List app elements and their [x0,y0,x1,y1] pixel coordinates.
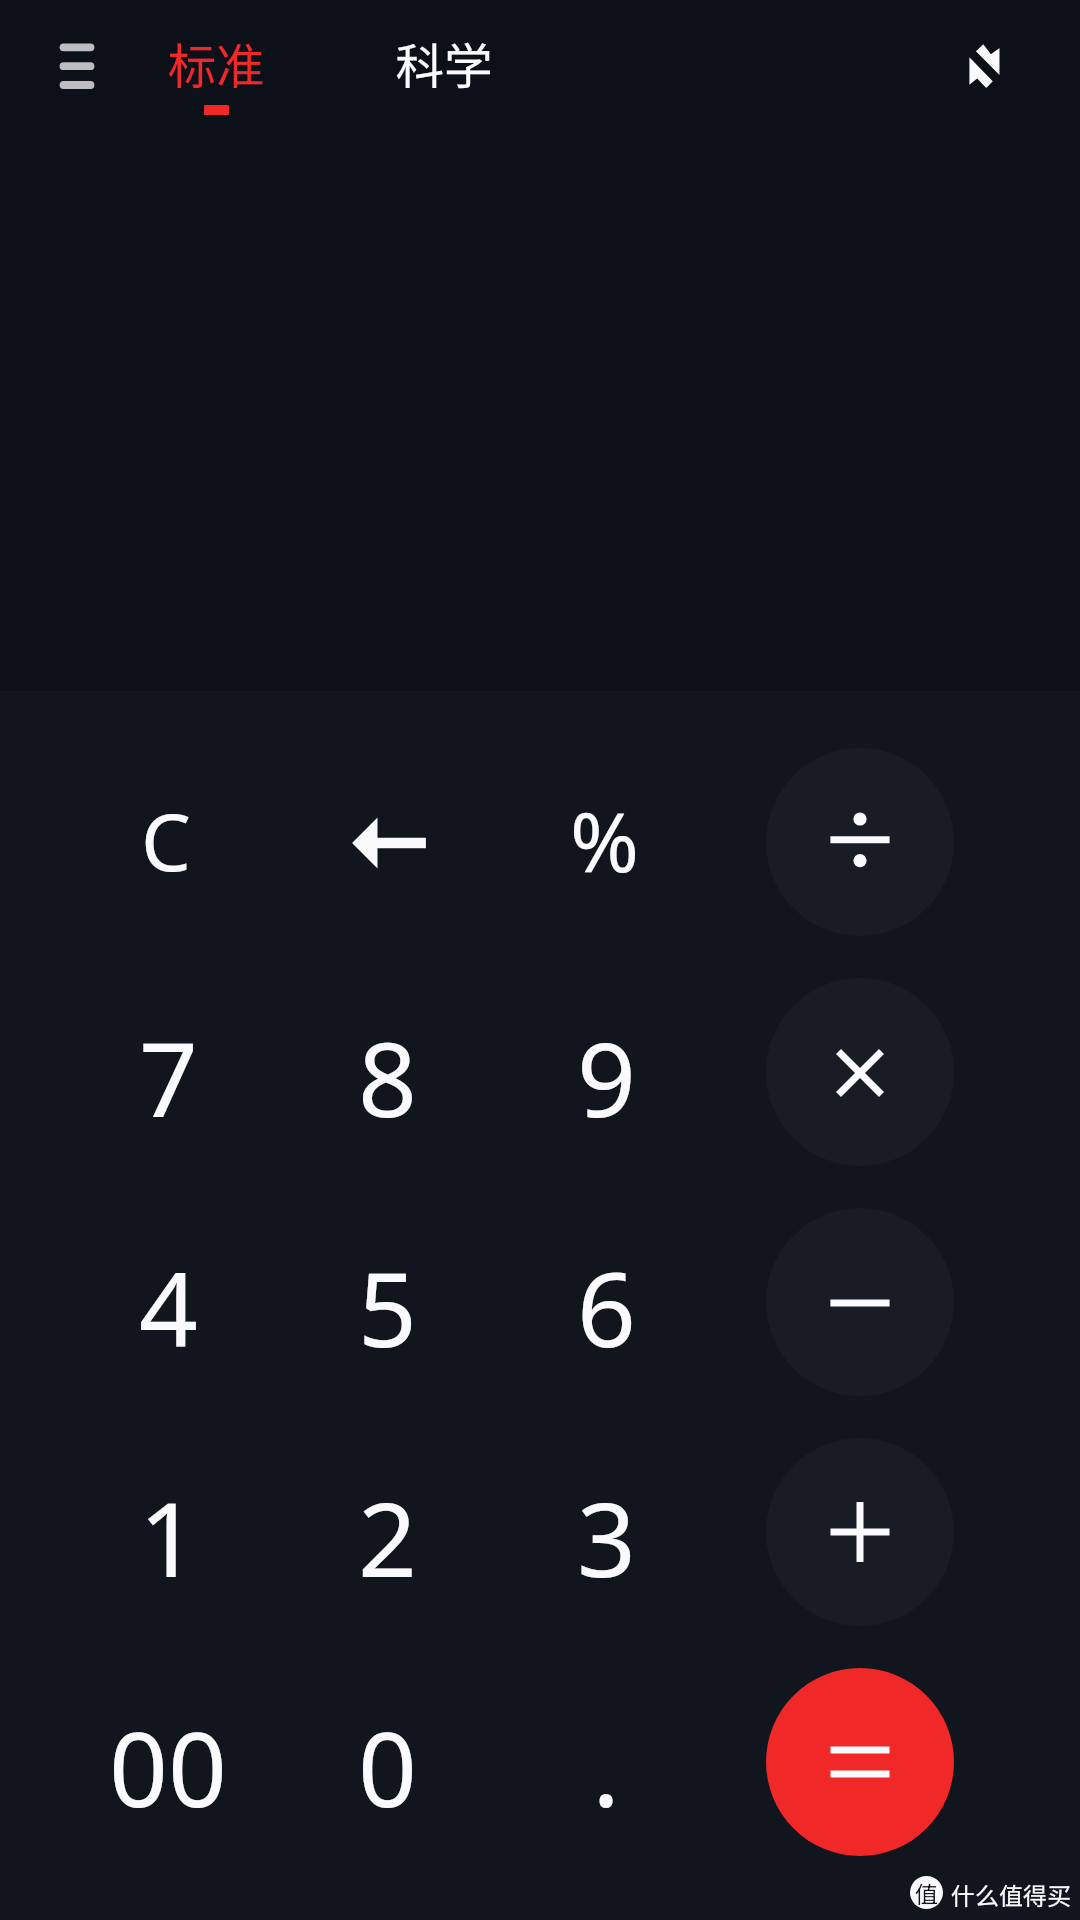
button[interactable]: Multiply [766,978,954,1166]
button[interactable]: Backspace [287,747,487,937]
staticText: 2 [358,1467,417,1607]
staticText: 科学 [395,28,493,98]
button[interactable]: 9 [506,982,706,1172]
button[interactable]: % [504,744,704,934]
staticText: 什么值得买 [951,1877,1071,1912]
button[interactable]: 科学 [378,0,510,130]
button[interactable]: Plus [766,1438,954,1626]
staticText: 标准 [167,28,265,98]
button[interactable]: 7 [68,982,268,1172]
staticText: . [592,1697,620,1837]
staticText: % [570,783,639,896]
button[interactable]: C [66,746,266,936]
staticText: 9 [577,1007,636,1147]
button[interactable]: . [506,1672,706,1862]
button[interactable]: Sound off [942,20,1026,110]
button[interactable]: 0 [287,1672,487,1862]
button[interactable]: Divide [766,748,954,936]
staticText: 0 [358,1697,417,1837]
button[interactable]: 标准 [150,0,282,130]
staticText: 5 [358,1237,417,1377]
button[interactable]: 4 [68,1212,268,1402]
button[interactable]: 3 [506,1442,706,1632]
button[interactable]: 8 [287,982,487,1172]
button[interactable]: 2 [287,1442,487,1632]
button[interactable]: 5 [287,1212,487,1402]
staticText: 4 [139,1237,198,1377]
button[interactable]: Equals [766,1668,954,1856]
staticText: 值 [915,1876,938,1909]
staticText: 8 [358,1007,417,1147]
button[interactable]: 1 [68,1442,268,1632]
staticText: 1 [139,1467,198,1607]
staticText: 7 [139,1007,198,1147]
staticText: C [141,787,191,895]
button[interactable]: Menu [38,20,118,100]
staticText: 6 [577,1237,636,1377]
staticText: 00 [109,1697,227,1837]
staticText: 3 [577,1467,636,1607]
button[interactable]: 6 [506,1212,706,1402]
button[interactable]: 00 [68,1672,268,1862]
button[interactable]: Minus [766,1208,954,1396]
